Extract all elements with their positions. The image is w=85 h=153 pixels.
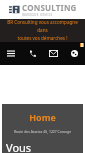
button[interactable]: Language bbox=[80, 43, 84, 47]
button[interactable]: Call us bbox=[22, 42, 43, 65]
button[interactable]: Home bbox=[27, 110, 58, 124]
staticText: CONSULTING bbox=[22, 2, 77, 13]
button[interactable]: Email us bbox=[43, 42, 64, 65]
staticText: BR Consulting vous accompagne dans toute… bbox=[4, 19, 81, 42]
button[interactable]: Find us bbox=[64, 42, 85, 65]
staticText: Home bbox=[29, 111, 56, 123]
staticText: Route des Acacias 46, 1227 Carouge bbox=[6, 129, 79, 134]
staticText: IMMOBILIER SERVICES bbox=[22, 13, 53, 17]
button[interactable]: Menu bbox=[0, 42, 22, 65]
staticText: Vous cherchez une location à bbox=[6, 140, 79, 153]
button[interactable]: BR Consulting home bbox=[7, 2, 79, 17]
